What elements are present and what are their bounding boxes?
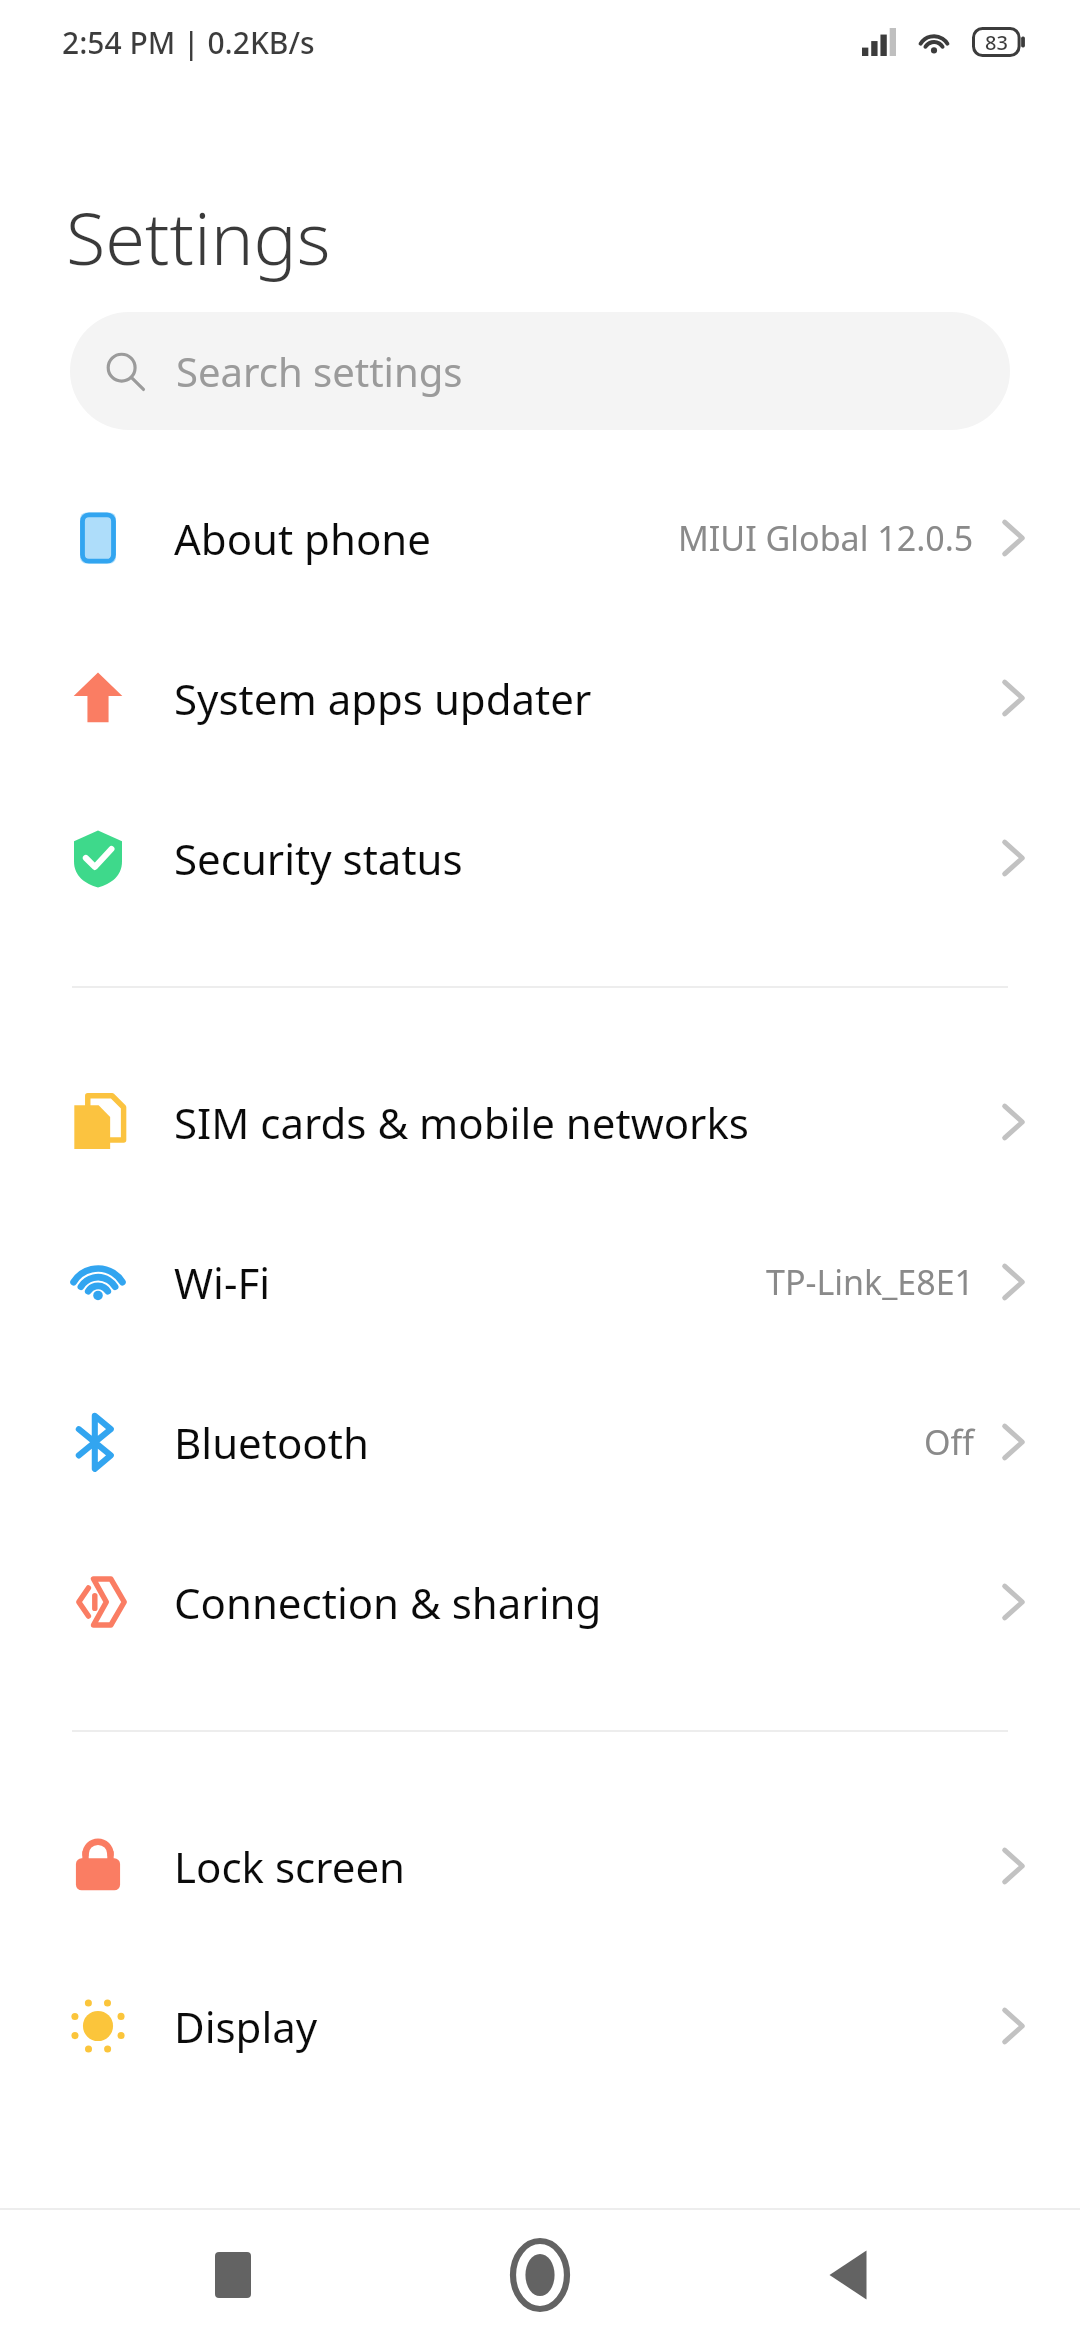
button[interactable]: Display bbox=[0, 1946, 1080, 2106]
staticText: Lock screen bbox=[174, 1838, 406, 1895]
button[interactable]: Search settings bbox=[70, 312, 1010, 430]
button[interactable]: Home bbox=[465, 2210, 615, 2340]
staticText: Off bbox=[924, 1419, 974, 1465]
staticText: Connection & sharing bbox=[174, 1574, 602, 1631]
button[interactable]: Wi-Fi bbox=[0, 1202, 1080, 1362]
staticText: Bluetooth bbox=[174, 1414, 369, 1471]
staticText: Settings bbox=[66, 188, 331, 286]
button[interactable]: Connection & sharing bbox=[0, 1522, 1080, 1682]
button[interactable]: Security status bbox=[0, 778, 1080, 938]
staticText: Wi-Fi bbox=[174, 1254, 271, 1311]
button[interactable]: SIM cards & mobile networks bbox=[0, 1042, 1080, 1202]
button[interactable]: System apps updater bbox=[0, 618, 1080, 778]
button[interactable]: Recent apps bbox=[158, 2210, 308, 2340]
staticText: Security status bbox=[174, 830, 463, 887]
button[interactable]: Lock screen bbox=[0, 1786, 1080, 1946]
button[interactable]: Bluetooth bbox=[0, 1362, 1080, 1522]
staticText: SIM cards & mobile networks bbox=[174, 1094, 749, 1151]
staticText: 2:54 PM | 0.2KB/s bbox=[62, 22, 315, 63]
staticText: About phone bbox=[174, 510, 431, 567]
staticText: Display bbox=[174, 1998, 318, 2055]
staticText: 83 bbox=[985, 29, 1008, 56]
staticText: System apps updater bbox=[174, 670, 592, 727]
button[interactable]: Back bbox=[773, 2210, 923, 2340]
staticText: TP-Link_E8E1 bbox=[766, 1259, 974, 1305]
button[interactable]: About phone bbox=[0, 458, 1080, 618]
staticText: MIUI Global 12.0.5 bbox=[678, 515, 974, 561]
staticText: Search settings bbox=[176, 344, 463, 398]
